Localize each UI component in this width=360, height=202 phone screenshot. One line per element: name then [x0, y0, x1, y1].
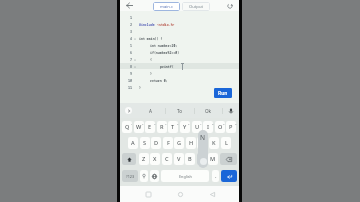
staticText: M	[210, 155, 216, 163]
button[interactable]: H	[186, 137, 196, 149]
staticText: 4	[165, 122, 167, 125]
staticText: int main() {	[139, 37, 163, 41]
staticText: 8	[212, 122, 214, 125]
staticText: D	[154, 139, 159, 147]
staticText: N	[200, 133, 206, 142]
staticText: 3	[130, 29, 133, 34]
staticText: 9	[223, 122, 225, 125]
staticText: I	[207, 123, 209, 131]
staticText: 2	[130, 22, 133, 27]
button[interactable]: M	[208, 153, 218, 165]
staticText: Run	[218, 90, 228, 97]
button[interactable]: P	[226, 121, 236, 133]
button[interactable]: Run history	[224, 0, 235, 11]
staticText: 6	[130, 50, 133, 55]
button[interactable]: Shift	[122, 153, 136, 165]
staticText: W	[136, 123, 142, 131]
staticText: if(number%2==0)	[150, 51, 180, 55]
staticText: To	[177, 108, 183, 114]
staticText: printf(	[160, 65, 174, 69]
button[interactable]: Run	[214, 88, 232, 98]
staticText: P	[229, 123, 233, 131]
button[interactable]: C	[162, 153, 172, 165]
staticText: 0	[235, 122, 237, 125]
staticText: L	[225, 139, 228, 147]
button[interactable]: Output	[182, 2, 210, 11]
staticText: A	[131, 139, 135, 147]
button[interactable]: Symbols	[122, 170, 138, 182]
button[interactable]: Enter	[221, 170, 237, 182]
staticText: A	[149, 108, 152, 114]
staticText: 10	[128, 78, 133, 83]
button[interactable]: main.c	[153, 2, 180, 11]
staticText: F	[167, 139, 170, 147]
button[interactable]: D	[151, 137, 161, 149]
staticText: Z	[142, 155, 146, 163]
staticText: 3	[154, 122, 156, 125]
staticText: 6	[188, 122, 190, 125]
staticText: 4	[130, 36, 133, 41]
staticText: C	[165, 155, 169, 163]
staticText: 5	[177, 122, 179, 125]
button[interactable]: Q	[122, 121, 132, 133]
button[interactable]: Voice input	[226, 105, 236, 117]
button[interactable]: S	[140, 137, 150, 149]
staticText: 2	[142, 122, 144, 125]
staticText: main.c	[160, 4, 174, 10]
button[interactable]: Clipboard	[140, 170, 148, 182]
button[interactable]: A	[139, 103, 161, 118]
button[interactable]: Z	[139, 153, 149, 165]
button[interactable]: V	[174, 153, 184, 165]
button[interactable]: U	[192, 121, 202, 133]
button[interactable]: X	[150, 153, 160, 165]
button[interactable]: Y	[180, 121, 190, 133]
button[interactable]: Switch language	[150, 170, 159, 182]
staticText: J	[201, 139, 203, 147]
button[interactable]: A	[128, 137, 138, 149]
staticText: B	[188, 155, 192, 163]
button[interactable]: Backspace	[220, 153, 237, 165]
button[interactable]: Back	[206, 188, 218, 200]
staticText: O	[218, 123, 223, 131]
staticText: <stdio.h>	[157, 23, 175, 27]
button[interactable]: More suggestions	[125, 107, 132, 114]
staticText: Ok	[205, 108, 212, 114]
button[interactable]: F	[163, 137, 173, 149]
button[interactable]: Home	[174, 188, 186, 200]
staticText: Y	[183, 123, 187, 131]
staticText: }	[139, 86, 141, 90]
button[interactable]: To	[169, 103, 191, 118]
staticText: R	[160, 123, 164, 131]
button[interactable]: T	[168, 121, 178, 133]
button[interactable]: G	[174, 137, 184, 149]
staticText: 5	[130, 43, 133, 48]
button[interactable]: Recents	[142, 188, 154, 200]
staticText: return 0;	[150, 79, 168, 83]
button[interactable]: I	[203, 121, 213, 133]
button[interactable]: W	[134, 121, 144, 133]
staticText: 1	[131, 122, 133, 125]
button[interactable]: R	[157, 121, 167, 133]
staticText: K	[212, 139, 216, 147]
button[interactable]: K	[209, 137, 219, 149]
button[interactable]: J	[197, 137, 207, 149]
staticText: 8	[130, 64, 133, 69]
button[interactable]: Space	[161, 170, 209, 182]
button[interactable]: .	[212, 170, 219, 182]
staticText: H	[189, 139, 194, 147]
staticText: V	[177, 155, 181, 163]
staticText: 9	[130, 71, 133, 76]
button[interactable]: E	[145, 121, 155, 133]
button[interactable]: Back	[122, 0, 136, 11]
button[interactable]: B	[185, 153, 195, 165]
staticText: S	[143, 139, 147, 147]
staticText: .	[215, 172, 217, 180]
staticText: int number=20;	[150, 44, 178, 48]
button[interactable]: O	[215, 121, 225, 133]
staticText: U	[195, 123, 200, 131]
staticText: Q	[125, 123, 130, 131]
button[interactable]	[197, 153, 207, 165]
button[interactable]: Ok	[197, 103, 219, 118]
button[interactable]: L	[221, 137, 231, 149]
staticText: English	[179, 174, 192, 179]
